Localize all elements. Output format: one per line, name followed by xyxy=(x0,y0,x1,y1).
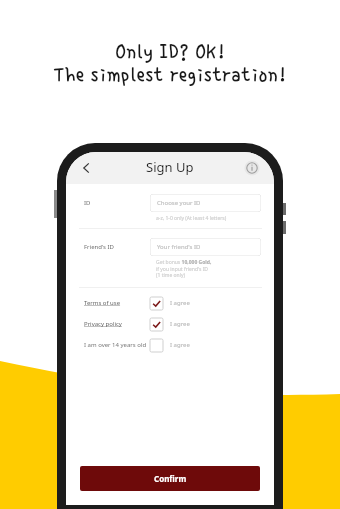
staticText: Choose your ID xyxy=(157,199,201,207)
staticText: I agree xyxy=(170,299,190,307)
staticText: Only ID? OK! xyxy=(115,41,226,64)
button[interactable]: I am over 14 years old xyxy=(78,335,246,355)
button[interactable]: Information xyxy=(244,160,260,176)
staticText: Friend's ID xyxy=(84,243,114,251)
staticText: Confirm xyxy=(154,473,187,484)
button[interactable]: Terms of use xyxy=(78,293,246,313)
button[interactable]: Your friend's ID xyxy=(150,238,261,256)
staticText: Terms of use xyxy=(84,299,156,307)
staticText: ID xyxy=(84,199,91,207)
button[interactable]: Choose your ID xyxy=(150,194,261,212)
staticText: a-z, 1-0 only (At least 4 letters) xyxy=(156,215,227,222)
staticText: Get bonus 10,000 Gold, if you input frie… xyxy=(156,259,212,279)
staticText: I agree xyxy=(170,341,190,349)
button[interactable]: Confirm xyxy=(80,466,260,491)
staticText: I am over 14 years old xyxy=(84,341,156,349)
button[interactable]: Back xyxy=(76,158,96,178)
staticText: Sign Up xyxy=(146,158,194,176)
button[interactable]: Privacy policy xyxy=(78,314,246,334)
staticText: The simplest registration! xyxy=(53,64,287,87)
staticText: I agree xyxy=(170,320,190,328)
staticText: Your friend's ID xyxy=(157,243,201,251)
staticText: Privacy policy xyxy=(84,320,156,328)
